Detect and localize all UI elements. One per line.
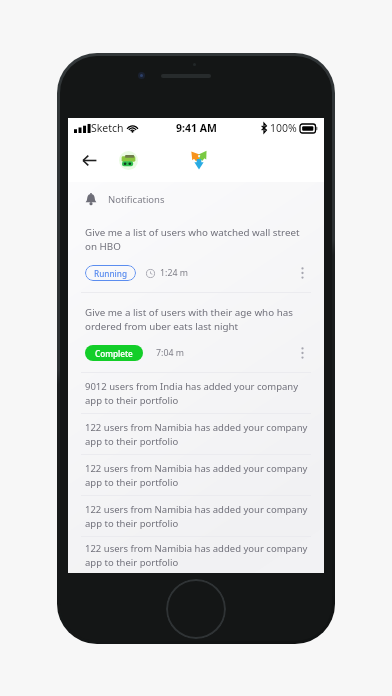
staticText: Complete bbox=[95, 348, 133, 359]
button[interactable]: Workspace bbox=[114, 146, 142, 174]
staticText: 9012 users from India has added your com… bbox=[85, 380, 309, 406]
staticText: Running bbox=[94, 268, 127, 279]
button[interactable]: 122 users from Namibia has added your co… bbox=[68, 496, 324, 536]
button[interactable]: App logo bbox=[184, 145, 214, 175]
staticText: 7:04 m bbox=[156, 347, 184, 359]
staticText: 1:24 m bbox=[160, 267, 188, 279]
button[interactable]: Complete bbox=[85, 345, 143, 361]
staticText: 100% bbox=[270, 121, 297, 135]
staticText: Give me a list of users who watched wall… bbox=[85, 226, 311, 252]
staticText: Notifications bbox=[108, 193, 165, 206]
staticText: Sketch bbox=[91, 121, 124, 135]
button[interactable]: Home bbox=[166, 579, 226, 639]
button[interactable]: 9012 users from India has added your com… bbox=[68, 373, 324, 413]
staticText: 122 users from Namibia has added your co… bbox=[85, 542, 309, 568]
button[interactable]: 122 users from Namibia has added your co… bbox=[68, 455, 324, 495]
staticText: Give me a list of users with their age w… bbox=[85, 306, 311, 332]
button[interactable]: Back bbox=[74, 145, 104, 175]
staticText: 122 users from Namibia has added your co… bbox=[85, 462, 309, 488]
button[interactable]: More options bbox=[293, 344, 311, 362]
button[interactable]: More options bbox=[293, 264, 311, 282]
button[interactable]: 122 users from Namibia has added your co… bbox=[68, 537, 324, 573]
button[interactable]: Notifications bbox=[68, 182, 324, 216]
staticText: 122 users from Namibia has added your co… bbox=[85, 421, 309, 447]
button[interactable]: Running bbox=[85, 265, 136, 281]
staticText: 9:41 AM bbox=[176, 121, 217, 135]
button[interactable]: 122 users from Namibia has added your co… bbox=[68, 414, 324, 454]
staticText: 122 users from Namibia has added your co… bbox=[85, 503, 309, 529]
button[interactable]: Give me a list of users with their age w… bbox=[68, 293, 324, 372]
button[interactable]: Give me a list of users who watched wall… bbox=[68, 216, 324, 292]
